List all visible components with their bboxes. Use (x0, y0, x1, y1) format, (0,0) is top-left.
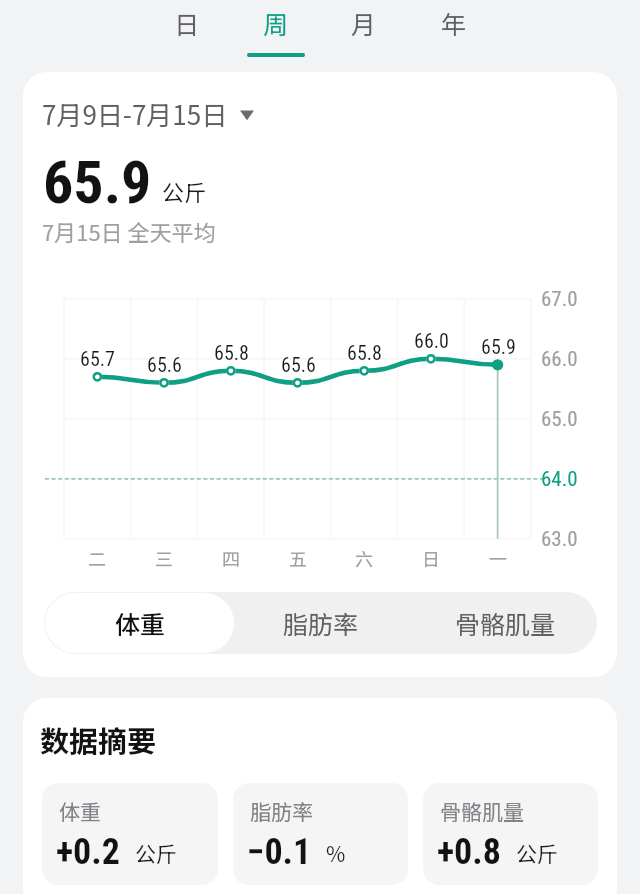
button[interactable]: 日 (145, 0, 229, 62)
staticText: 65.8 (347, 341, 382, 364)
staticText: 数据摘要 (40, 718, 157, 760)
staticText: 65.6 (281, 353, 316, 376)
button[interactable]: 月 (322, 0, 406, 62)
staticText: 65.6 (147, 353, 182, 376)
button[interactable]: 骨骼肌量 (413, 592, 597, 654)
staticText: 65.8 (214, 341, 249, 364)
staticText: 66.0 (541, 347, 578, 372)
staticText: 三 (155, 545, 173, 571)
staticText: 65.0 (541, 407, 578, 432)
staticText: 月 (351, 5, 377, 41)
staticText: 五 (289, 545, 307, 571)
staticText: 一 (489, 545, 507, 571)
staticText: 日 (174, 5, 200, 41)
staticText: 公斤 (162, 175, 207, 207)
staticText: 7月15日 全天平均 (42, 215, 216, 247)
staticText: −0.1 (247, 831, 312, 873)
button[interactable]: 年 (412, 0, 496, 62)
staticText: 公斤 (516, 838, 558, 868)
staticText: 四 (222, 545, 240, 571)
staticText: 体重 (59, 796, 101, 826)
button[interactable]: 周 (234, 0, 318, 62)
staticText: 脂肪率 (250, 796, 313, 826)
staticText: 骨骼肌量 (455, 605, 556, 641)
staticText: +0.8 (437, 831, 501, 873)
staticText: 65.7 (80, 347, 115, 370)
staticText: 日 (422, 545, 440, 571)
staticText: 年 (441, 5, 467, 41)
staticText: +0.2 (56, 831, 120, 873)
staticText: % (326, 838, 346, 868)
staticText: 66.0 (414, 329, 449, 352)
staticText: 周 (263, 5, 289, 41)
staticText: 脂肪率 (283, 605, 359, 641)
staticText: 65.9 (43, 147, 152, 217)
staticText: 公斤 (135, 838, 177, 868)
button[interactable]: 体重 (42, 783, 218, 885)
staticText: 67.0 (541, 287, 578, 312)
staticText: 63.0 (541, 527, 578, 552)
button[interactable]: 7月9日-7月15日 (42, 95, 254, 133)
staticText: 体重 (115, 605, 166, 641)
staticText: 7月9日-7月15日 (42, 95, 228, 133)
staticText: 骨骼肌量 (440, 796, 524, 826)
staticText: 65.9 (481, 335, 516, 358)
staticText: 二 (88, 545, 106, 571)
staticText: 六 (355, 545, 373, 571)
button[interactable]: 脂肪率 (229, 592, 413, 654)
button[interactable]: 体重 (48, 592, 232, 654)
button[interactable]: 骨骼肌量 (423, 783, 598, 885)
staticText: 64.0 (541, 467, 578, 492)
button[interactable]: 脂肪率 (233, 783, 408, 885)
